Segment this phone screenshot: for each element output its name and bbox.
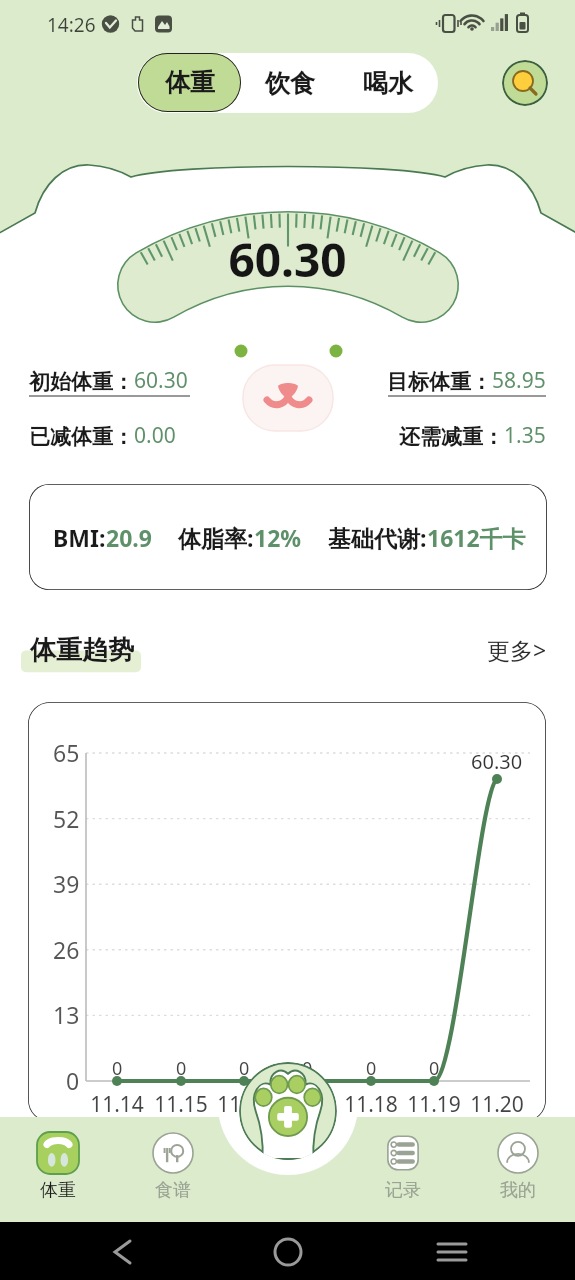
staticText: 58.95 bbox=[492, 366, 546, 395]
button[interactable]: 我的 bbox=[460, 1117, 575, 1222]
staticText: 0.00 bbox=[134, 421, 176, 450]
staticText: 1612千卡 bbox=[427, 522, 526, 553]
staticText: 11.15 bbox=[154, 1090, 208, 1119]
staticText: 1.35 bbox=[504, 421, 546, 450]
staticText: 体重趋势 bbox=[30, 634, 134, 667]
staticText: 11.20 bbox=[470, 1090, 524, 1119]
staticText: 65 bbox=[53, 737, 80, 768]
staticText: 体脂率: bbox=[178, 522, 254, 553]
staticText: 11.18 bbox=[344, 1090, 398, 1119]
staticText: 基础代谢: bbox=[328, 522, 427, 553]
staticText: 11.19 bbox=[407, 1090, 461, 1119]
button[interactable]: 体重 bbox=[138, 53, 241, 112]
staticText: 11.17 bbox=[280, 1090, 334, 1119]
button[interactable]: BMI: bbox=[29, 484, 547, 590]
button[interactable]: 饮食 bbox=[247, 56, 332, 111]
staticText: 60.30 bbox=[134, 366, 188, 395]
staticText: 食谱 bbox=[155, 1179, 191, 1202]
staticText: 0 bbox=[302, 1056, 313, 1081]
staticText: 0 bbox=[66, 1065, 80, 1096]
staticText: 60.30 bbox=[471, 748, 523, 775]
staticText: 目标体重： bbox=[387, 369, 492, 395]
button[interactable]: Search bbox=[502, 60, 548, 106]
button[interactable]: 记录 bbox=[345, 1117, 460, 1222]
staticText: 初始体重： bbox=[29, 369, 134, 395]
button[interactable]: 食谱 bbox=[115, 1117, 230, 1222]
staticText: 26 bbox=[53, 934, 80, 965]
staticText: 0 bbox=[176, 1056, 187, 1081]
staticText: 14:26 bbox=[47, 12, 96, 38]
button[interactable]: 体重 bbox=[0, 1117, 115, 1222]
staticText: 饮食 bbox=[265, 68, 315, 99]
staticText: 11.16 bbox=[217, 1090, 271, 1119]
staticText: 更多> bbox=[487, 634, 547, 665]
button[interactable]: 喝水 bbox=[345, 56, 430, 111]
staticText: 我的 bbox=[500, 1179, 536, 1202]
staticText: 体重 bbox=[40, 1179, 76, 1202]
staticText: 13 bbox=[53, 999, 80, 1030]
staticText: 0 bbox=[429, 1056, 440, 1081]
staticText: BMI: bbox=[53, 522, 106, 553]
staticText: 体重 bbox=[165, 67, 215, 98]
staticText: 0 bbox=[239, 1056, 250, 1081]
button[interactable]: 更多> bbox=[487, 634, 547, 665]
staticText: 20.9 bbox=[106, 522, 152, 553]
staticText: 0 bbox=[112, 1056, 123, 1081]
staticText: 已减体重： bbox=[29, 424, 134, 450]
staticText: 12% bbox=[254, 522, 302, 553]
staticText: 52 bbox=[53, 803, 80, 834]
staticText: 39 bbox=[53, 868, 80, 899]
staticText: 还需减重： bbox=[399, 424, 504, 450]
staticText: 0 bbox=[366, 1056, 377, 1081]
staticText: 11.14 bbox=[90, 1090, 144, 1119]
staticText: 60.30 bbox=[0, 228, 575, 291]
staticText: 喝水 bbox=[363, 68, 413, 99]
button[interactable]: Add record bbox=[239, 1062, 337, 1160]
staticText: 记录 bbox=[385, 1179, 421, 1202]
